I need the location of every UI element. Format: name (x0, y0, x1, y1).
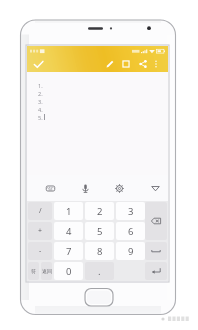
button[interactable]: Voice input (74, 177, 96, 199)
staticText: 3 (128, 205, 134, 218)
staticText: . (98, 265, 101, 278)
button[interactable]: 6 (116, 222, 145, 240)
staticText: 4 (66, 225, 72, 238)
button[interactable]: Enter (145, 262, 167, 280)
staticText: 4. (38, 106, 43, 113)
staticText: 2. (38, 90, 43, 97)
staticText: 8 (97, 245, 103, 258)
staticText: 0 (66, 265, 72, 278)
button[interactable]: Space (145, 242, 167, 260)
button[interactable]: 4. (38, 105, 179, 113)
button[interactable]: 3. (38, 97, 179, 105)
button[interactable]: . (85, 262, 114, 280)
button[interactable]: Copy (118, 56, 134, 72)
button[interactable]: Done (27, 56, 49, 72)
staticText: 1. (38, 82, 43, 89)
staticText: 9 (128, 245, 134, 258)
staticText: 1 (66, 205, 72, 218)
button[interactable]: Switch keyboard (39, 177, 61, 199)
staticText: 5. (38, 114, 43, 121)
button[interactable]: Share (135, 56, 151, 72)
staticText: 返回 (42, 268, 52, 274)
button[interactable]: 7 (54, 242, 83, 260)
button[interactable]: 4 (54, 222, 83, 240)
staticText: 2 (97, 205, 103, 218)
button[interactable]: 0 (54, 262, 83, 280)
button[interactable]: 5 (85, 222, 114, 240)
button[interactable]: 8 (85, 242, 114, 260)
staticText: + (38, 226, 43, 236)
button[interactable]: 5. (38, 113, 179, 121)
button[interactable]: Edit (102, 56, 118, 72)
staticText: 7 (66, 245, 72, 258)
staticText: 6 (128, 225, 134, 238)
button[interactable]: 3 (116, 202, 145, 220)
button[interactable]: 1. (38, 81, 179, 89)
staticText: - (39, 246, 42, 256)
button[interactable]: + (28, 222, 52, 240)
button[interactable]: - (28, 242, 52, 260)
button[interactable]: Backspace (145, 202, 167, 240)
staticText: 5 (97, 225, 103, 238)
button[interactable]: 符 (28, 262, 39, 280)
button[interactable]: 2 (85, 202, 114, 220)
button[interactable]: More options (148, 56, 164, 72)
button[interactable]: 9 (116, 242, 145, 260)
staticText: 3. (38, 98, 43, 105)
button[interactable]: 1 (54, 202, 83, 220)
button[interactable]: Hide keyboard (144, 177, 166, 199)
button[interactable]: 返回 (41, 262, 52, 280)
staticText: 符 (31, 268, 36, 274)
button[interactable]: Keyboard settings (108, 177, 130, 199)
button[interactable]: / (28, 202, 52, 220)
button[interactable]: 2. (38, 89, 179, 97)
staticText: / (39, 206, 42, 216)
